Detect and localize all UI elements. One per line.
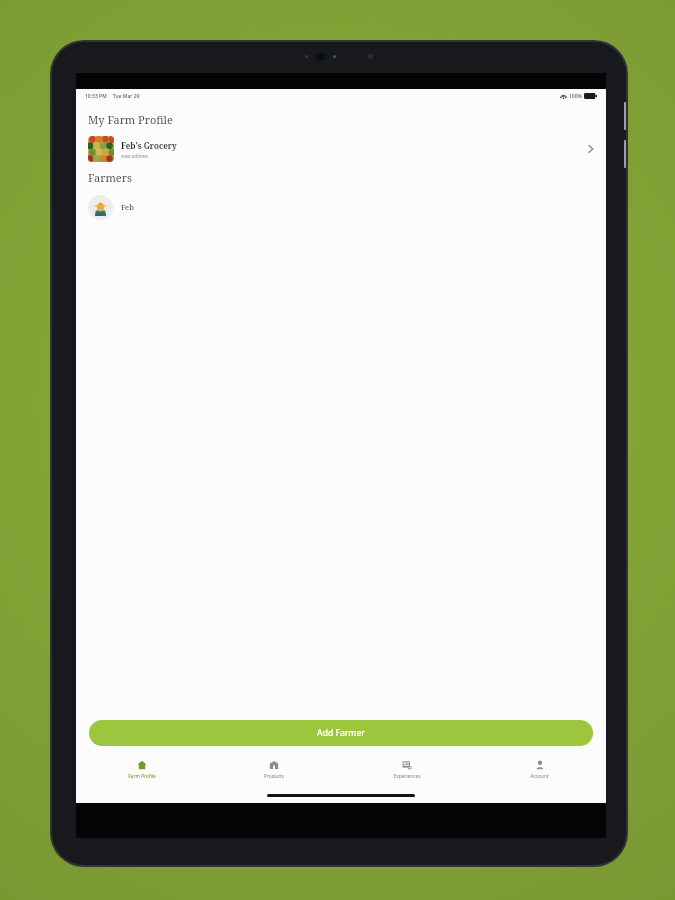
other: Open farm details	[588, 144, 594, 154]
button[interactable]: Feb's Grocery	[76, 133, 606, 165]
staticText: 10:33 PM	[85, 93, 107, 100]
button[interactable]: Farm Profile	[76, 755, 208, 785]
staticText: Products	[264, 773, 284, 780]
staticText: Farm Profile	[128, 773, 156, 780]
staticText: Experiences	[393, 773, 421, 780]
staticText: Feb	[121, 202, 134, 212]
button[interactable]: Products	[208, 755, 340, 785]
button[interactable]: Experiences	[340, 755, 473, 785]
staticText: Farmers	[88, 170, 132, 185]
button[interactable]: Add Farmer	[89, 720, 593, 746]
staticText: 100%	[569, 93, 582, 100]
staticText: Tue Mar 29	[113, 93, 140, 100]
button[interactable]: Feb	[76, 192, 606, 222]
staticText: Add Farmer	[317, 727, 365, 739]
staticText: Feb's Grocery	[121, 140, 177, 151]
staticText: My Farm Profile	[88, 112, 173, 127]
staticText: view address	[121, 153, 149, 159]
button[interactable]: Account	[473, 755, 606, 785]
staticText: Account	[530, 773, 549, 780]
